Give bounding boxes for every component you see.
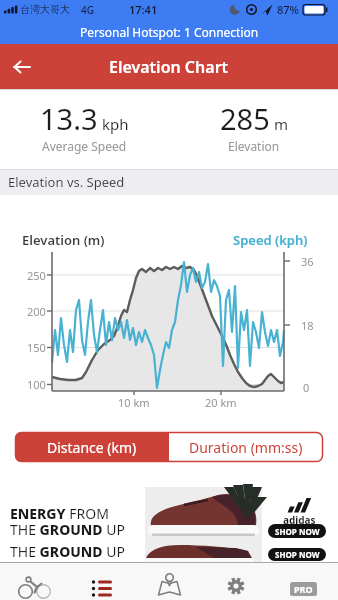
button[interactable]: ENERGY FROM xyxy=(0,487,338,562)
staticText: Elevation xyxy=(228,138,280,154)
button[interactable]: Duration (mm:ss) xyxy=(169,432,323,462)
button[interactable]: SHOP NOW xyxy=(268,548,326,561)
button[interactable]: SHOP NOW xyxy=(268,524,326,538)
button[interactable] xyxy=(202,563,270,600)
staticText: kph xyxy=(98,114,129,134)
staticText: 200 xyxy=(27,304,46,319)
staticText: 18 xyxy=(301,318,314,333)
staticText: m xyxy=(270,114,288,134)
staticText: 4G xyxy=(81,3,94,17)
staticText: Average Speed xyxy=(42,138,127,154)
staticText: 36 xyxy=(301,254,314,269)
button[interactable] xyxy=(67,563,134,600)
staticText: THE GROUND UP xyxy=(10,542,125,561)
staticText: 285 xyxy=(220,99,270,138)
button[interactable] xyxy=(270,563,338,600)
staticText: 87% xyxy=(277,2,299,17)
staticText: 10 km xyxy=(118,395,150,410)
button[interactable] xyxy=(0,44,44,89)
staticText: 250 xyxy=(27,268,46,283)
staticText: 17:41 xyxy=(129,2,158,17)
staticText: Distance (km) xyxy=(47,438,137,457)
staticText: SHOP NOW xyxy=(275,526,320,537)
staticText: PRO xyxy=(294,583,313,595)
staticText: Elevation vs. Speed xyxy=(8,173,125,191)
staticText: Speed (kph) xyxy=(233,231,308,249)
button[interactable] xyxy=(134,563,202,600)
staticText: ENERGY FROM xyxy=(10,504,109,523)
staticText: 150 xyxy=(27,340,46,355)
staticText: 100 xyxy=(27,377,46,392)
button[interactable] xyxy=(0,563,67,600)
button[interactable]: Distance (km) xyxy=(15,432,169,462)
staticText: Elevation Chart xyxy=(109,56,229,78)
staticText: 13.3 xyxy=(40,99,98,138)
staticText: adidas xyxy=(283,513,316,527)
staticText: Personal Hotspot: 1 Connection xyxy=(80,24,259,40)
staticText: 0 xyxy=(303,380,310,395)
staticText: Duration (mm:ss) xyxy=(189,438,303,457)
staticText: 20 km xyxy=(205,395,237,410)
staticText: THE GROUND UP xyxy=(10,520,125,539)
staticText: 台湾大哥大 xyxy=(20,3,70,16)
staticText: SHOP NOW xyxy=(275,549,320,560)
staticText: Elevation (m) xyxy=(22,231,105,249)
